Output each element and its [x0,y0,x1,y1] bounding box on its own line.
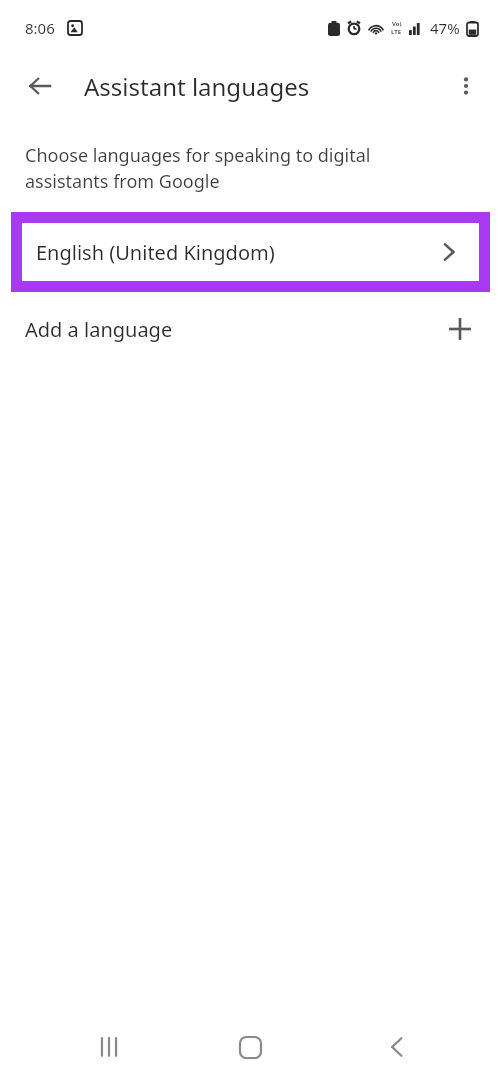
staticText: LTE [391,28,402,36]
staticText: 47% [430,18,460,38]
button[interactable]: Back [16,62,64,110]
staticText: Add a language [25,316,173,343]
button[interactable]: Home [226,1023,274,1071]
button[interactable]: English (United Kingdom) [22,223,479,281]
staticText: Assistant languages [84,70,310,103]
staticText: Choose languages for speaking to digital… [25,143,440,194]
button[interactable]: Recent apps [85,1023,133,1071]
button[interactable]: Back [373,1023,421,1071]
button[interactable]: Add a language [0,292,500,366]
staticText: English (United Kingdom) [36,239,275,266]
staticText: Vo) [392,20,402,28]
button[interactable]: More options [442,62,490,110]
staticText: 8:06 [25,18,55,38]
